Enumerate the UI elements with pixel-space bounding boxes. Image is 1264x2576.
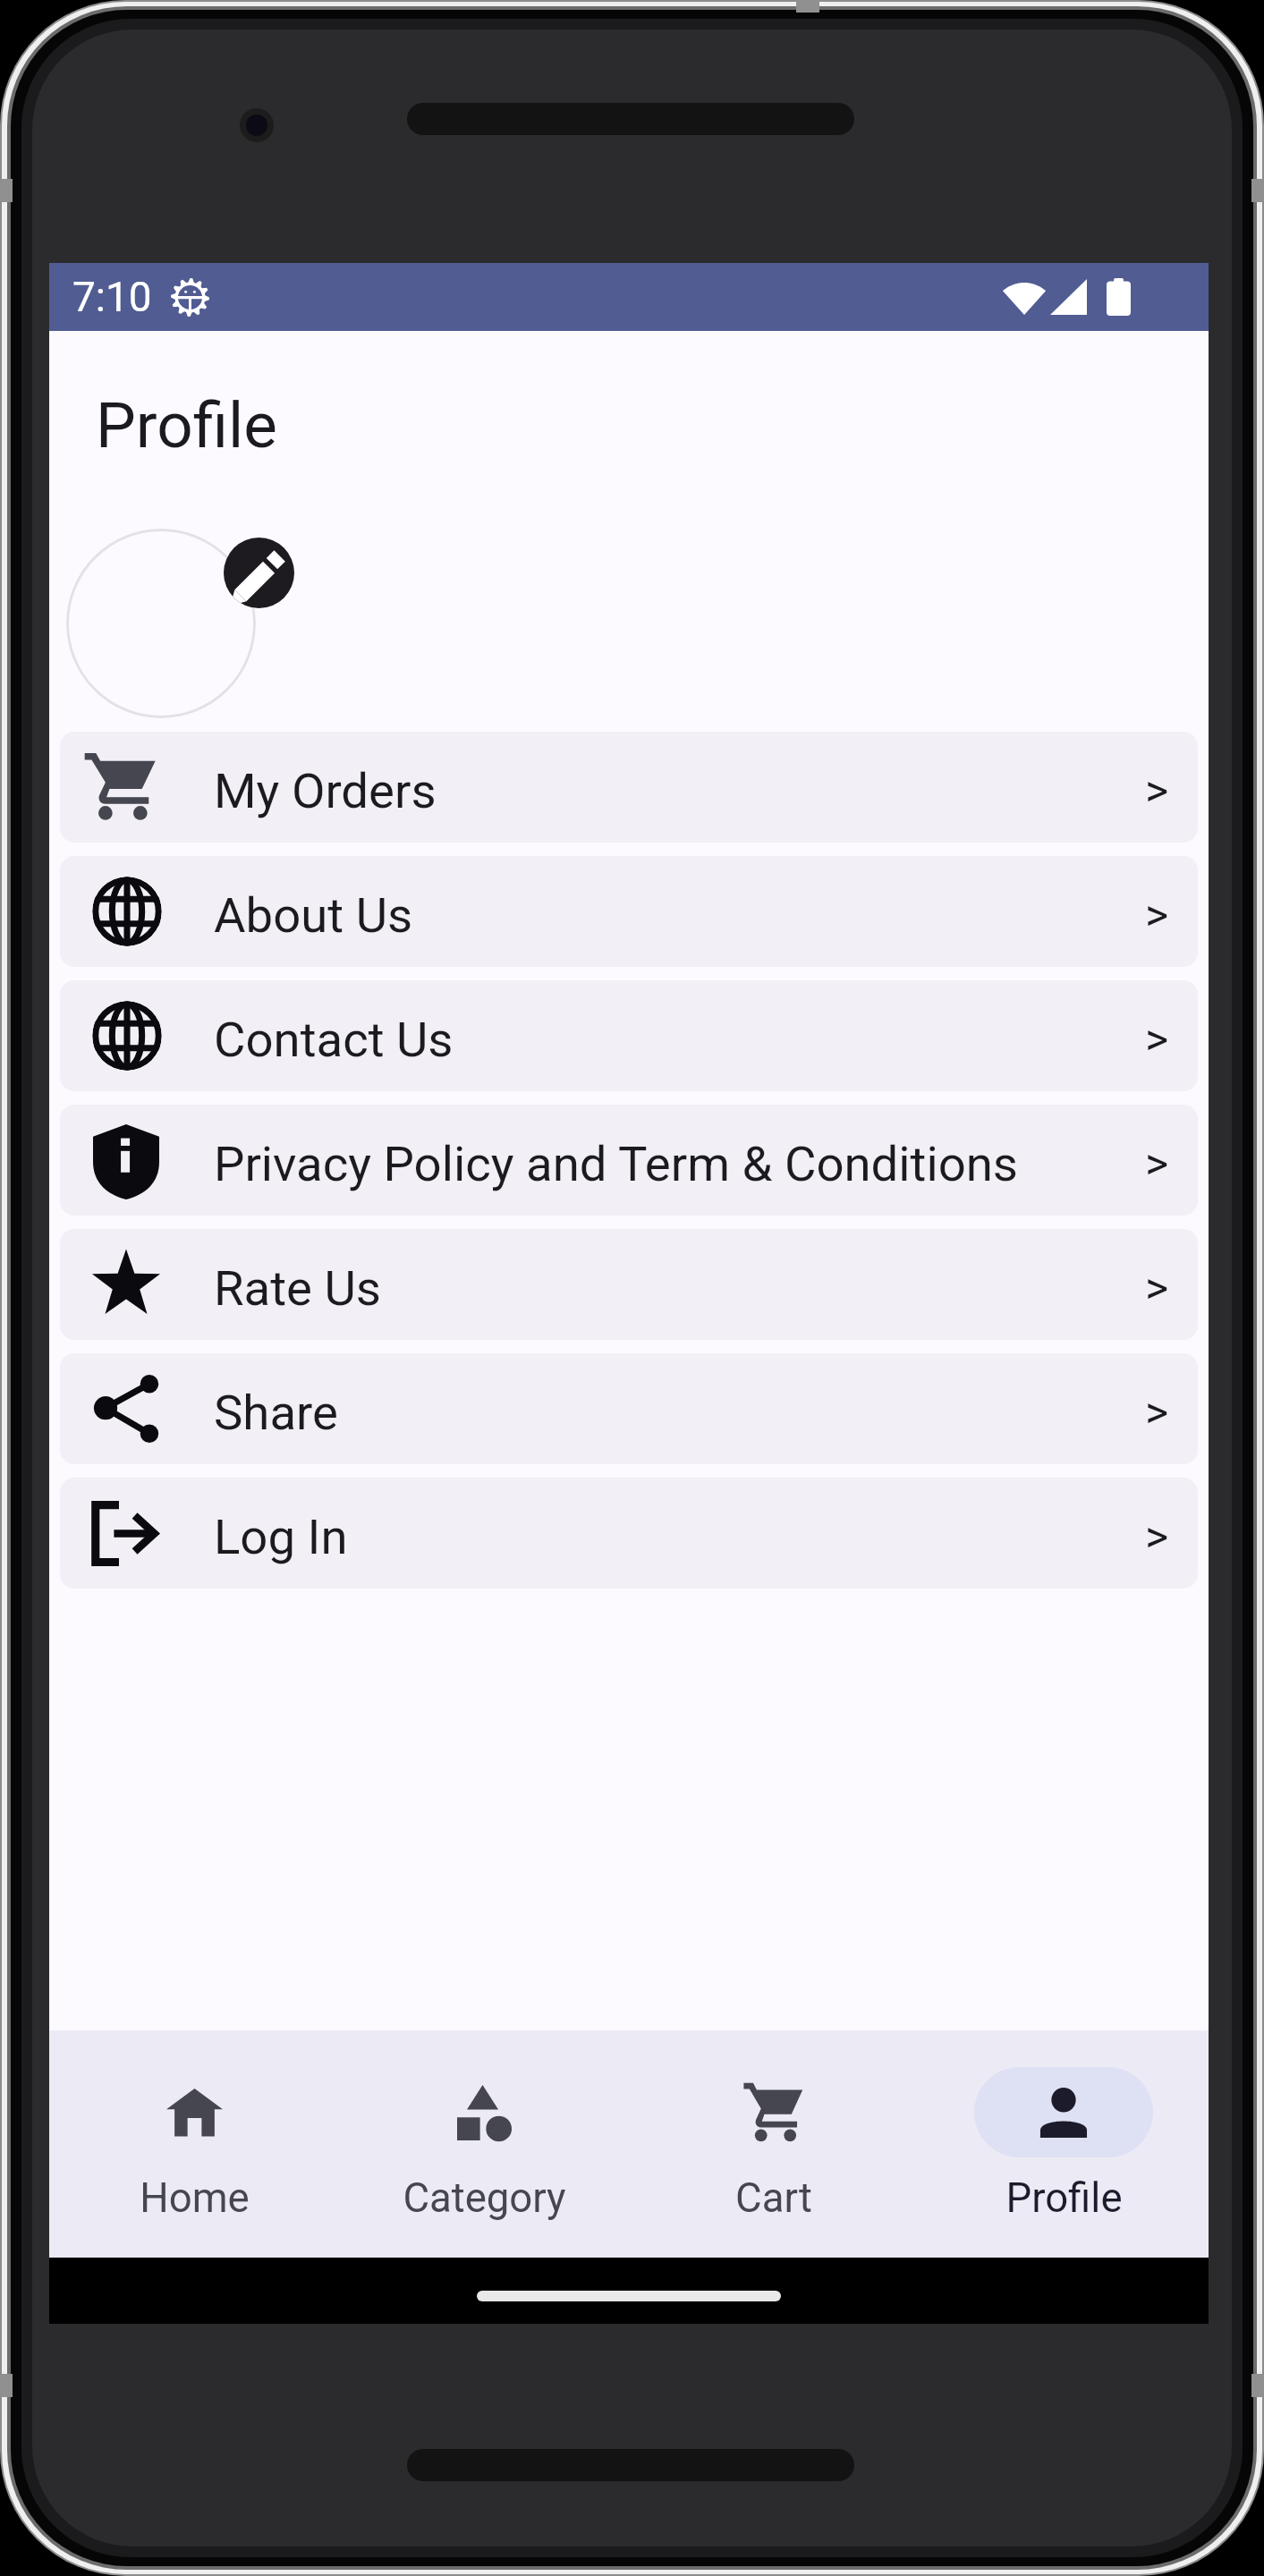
staticText: My Orders [214, 762, 437, 819]
staticText: Log In [214, 1508, 348, 1565]
staticText: Home [140, 2174, 250, 2222]
button[interactable]: My Orders [60, 732, 1198, 843]
staticText: > [1145, 1138, 1169, 1191]
button[interactable]: Share [60, 1353, 1198, 1464]
button[interactable]: Privacy Policy and Term & Conditions [60, 1105, 1198, 1216]
staticText: > [1145, 1013, 1169, 1066]
staticText: Cart [735, 2174, 812, 2222]
staticText: Profile [96, 388, 277, 462]
button[interactable]: Log In [60, 1478, 1198, 1589]
button[interactable]: Rate Us [60, 1229, 1198, 1340]
staticText: > [1145, 1511, 1169, 1563]
staticText: > [1145, 765, 1169, 818]
staticText: About Us [214, 886, 413, 944]
staticText: > [1145, 1262, 1169, 1315]
button[interactable]: Contact Us [60, 980, 1198, 1091]
button[interactable]: About Us [60, 856, 1198, 967]
staticText: Rate Us [214, 1259, 381, 1317]
staticText: Category [403, 2174, 566, 2222]
staticText: Contact Us [214, 1011, 454, 1068]
staticText: Share [214, 1384, 338, 1441]
button[interactable]: Category [339, 2030, 629, 2258]
staticText: 7:10 [72, 273, 152, 321]
button[interactable]: Cart [629, 2030, 919, 2258]
staticText: > [1145, 889, 1169, 942]
button[interactable]: Profile [919, 2030, 1209, 2258]
staticText: Profile [1005, 2174, 1123, 2222]
button[interactable]: Home [49, 2030, 339, 2258]
staticText: Privacy Policy and Term & Conditions [214, 1135, 1018, 1192]
button[interactable]: Edit profile photo [224, 538, 294, 608]
button[interactable]: Profile photo [66, 529, 256, 718]
staticText: > [1145, 1386, 1169, 1439]
